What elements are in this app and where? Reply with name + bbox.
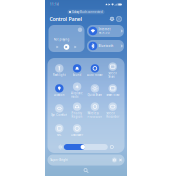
staticText: Location bbox=[54, 93, 65, 97]
button[interactable]: Screen Recorder bbox=[104, 101, 122, 120]
staticText: Not playing bbox=[53, 38, 69, 41]
staticText: Quick Share bbox=[87, 93, 102, 97]
button[interactable]: Location bbox=[50, 81, 68, 100]
button[interactable]: Smart View bbox=[104, 81, 122, 100]
button[interactable]: Devices bbox=[115, 15, 122, 22]
staticText: Data saver bbox=[71, 133, 83, 137]
button[interactable]: Auto rotate bbox=[86, 61, 104, 80]
button[interactable]: Priority Region bbox=[68, 101, 86, 120]
button[interactable]: Bluetooth bbox=[87, 40, 124, 52]
staticText: Bluetooth bbox=[99, 44, 114, 48]
staticText: Screen Share bbox=[108, 71, 117, 79]
staticText: Control Panel bbox=[49, 15, 82, 23]
staticText: Wireless Protection bbox=[87, 111, 102, 119]
button[interactable]: Search bbox=[82, 166, 90, 175]
staticText: 11:14 bbox=[50, 3, 59, 6]
button[interactable]: Settings bbox=[108, 15, 115, 22]
staticText: Flashlight bbox=[53, 73, 66, 77]
staticText: Wi-Fi-5G bbox=[99, 31, 110, 34]
button[interactable]: Flashlight bbox=[50, 61, 68, 80]
staticText: Priority Region bbox=[72, 111, 83, 119]
button[interactable]: Internet bbox=[87, 25, 124, 37]
staticText: Airplane mode bbox=[71, 91, 83, 99]
button[interactable]: NFC bbox=[50, 121, 68, 140]
staticText: Galaxy Buds connected bbox=[72, 10, 103, 14]
button[interactable]: Wireless Protection bbox=[86, 101, 104, 120]
button[interactable]: Super Bright bbox=[47, 154, 124, 165]
staticText: Screen Recorder bbox=[106, 111, 119, 119]
button[interactable]: Sound bbox=[68, 61, 86, 80]
staticText: Eye Comfort bbox=[51, 113, 67, 117]
staticText: Auto rotate bbox=[87, 73, 103, 77]
button[interactable]: Not playing bbox=[48, 25, 84, 52]
button[interactable]: Data saver bbox=[68, 121, 86, 140]
button[interactable]: Quick Share bbox=[86, 81, 104, 100]
staticText: Sound bbox=[73, 73, 82, 77]
staticText: Internet bbox=[99, 28, 111, 31]
staticText: Smart View bbox=[106, 93, 119, 97]
button[interactable]: Screen Share bbox=[104, 61, 122, 80]
staticText: Super Bright bbox=[50, 158, 68, 162]
button[interactable]: Airplane mode bbox=[68, 81, 86, 100]
button[interactable]: Eye Comfort bbox=[50, 101, 68, 120]
staticText: NFC bbox=[57, 133, 62, 137]
